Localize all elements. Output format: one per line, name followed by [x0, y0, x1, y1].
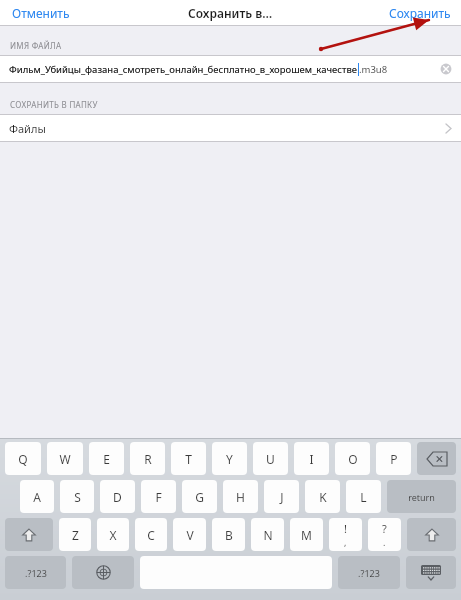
staticText: return: [408, 491, 435, 503]
button[interactable]: Файлы: [0, 115, 461, 141]
staticText: N: [263, 527, 273, 543]
staticText: Фильм_Убийцы_фазана_смотреть_онлайн_бесп…: [9, 63, 358, 76]
button[interactable]: return: [387, 480, 456, 513]
button[interactable]: F: [141, 480, 176, 513]
button[interactable]: Backspace: [417, 442, 456, 475]
staticText: J: [280, 489, 284, 505]
button[interactable]: I: [294, 442, 329, 475]
button[interactable]: ?: [368, 518, 401, 551]
button[interactable]: U: [253, 442, 288, 475]
button[interactable]: .?123: [338, 556, 400, 589]
staticText: U: [266, 451, 275, 467]
button[interactable]: !: [329, 518, 362, 551]
staticText: S: [74, 489, 81, 505]
staticText: G: [195, 489, 204, 505]
staticText: V: [186, 527, 194, 543]
staticText: ИМЯ ФАЙЛА: [10, 40, 62, 51]
staticText: W: [59, 451, 71, 467]
staticText: P: [390, 451, 398, 467]
staticText: Файлы: [9, 121, 46, 136]
button[interactable]: L: [346, 480, 381, 513]
staticText: E: [103, 451, 110, 467]
staticText: T: [185, 451, 192, 467]
button[interactable]: A: [20, 480, 54, 513]
staticText: Отменить: [12, 5, 70, 21]
button[interactable]: Q: [5, 442, 41, 475]
button[interactable]: Очистить: [439, 62, 453, 76]
staticText: L: [360, 489, 367, 505]
button[interactable]: Y: [212, 442, 247, 475]
button[interactable]: D: [100, 480, 135, 513]
staticText: B: [225, 527, 233, 543]
staticText: M: [301, 527, 312, 543]
button[interactable]: E: [89, 442, 124, 475]
staticText: K: [319, 489, 327, 505]
staticText: C: [147, 527, 155, 543]
button[interactable]: P: [376, 442, 411, 475]
button[interactable]: Z: [59, 518, 91, 551]
button[interactable]: .?123: [5, 556, 66, 589]
button[interactable]: J: [264, 480, 299, 513]
button[interactable]: G: [182, 480, 217, 513]
button[interactable]: Отменить: [6, 2, 76, 24]
button[interactable]: C: [135, 518, 167, 551]
button[interactable]: Фильм_Убийцы_фазана_смотреть_онлайн_бесп…: [0, 56, 461, 82]
staticText: СОХРАНИТЬ В ПАПКУ: [10, 99, 98, 110]
button[interactable]: V: [173, 518, 206, 551]
staticText: Y: [226, 451, 233, 467]
staticText: .m3u8: [359, 63, 388, 76]
staticText: I: [309, 451, 314, 467]
button[interactable]: Скрыть клавиатуру: [406, 556, 456, 589]
staticText: Сохранить в…: [188, 5, 273, 21]
staticText: R: [144, 451, 152, 467]
button[interactable]: S: [60, 480, 94, 513]
staticText: A: [33, 489, 41, 505]
staticText: H: [236, 489, 245, 505]
staticText: .?123: [358, 567, 380, 579]
button[interactable]: X: [97, 518, 129, 551]
staticText: .: [383, 536, 386, 548]
button[interactable]: M: [290, 518, 323, 551]
staticText: .?123: [25, 567, 47, 579]
button[interactable]: T: [171, 442, 206, 475]
staticText: F: [155, 489, 162, 505]
button[interactable]: Сменить язык: [72, 556, 134, 589]
staticText: Q: [18, 451, 28, 467]
button[interactable]: K: [305, 480, 340, 513]
button[interactable]: Сохранить: [383, 2, 457, 24]
staticText: Фильм_Убийцы_фазана_смотреть_онлайн_бесп…: [9, 63, 358, 76]
staticText: D: [113, 489, 122, 505]
button[interactable]: Shift: [407, 518, 456, 551]
staticText: Z: [72, 527, 79, 543]
button[interactable]: O: [335, 442, 370, 475]
staticText: !: [344, 521, 347, 536]
button[interactable]: Shift: [5, 518, 53, 551]
staticText: ?: [382, 521, 387, 536]
staticText: ,: [344, 536, 347, 548]
button[interactable]: R: [130, 442, 165, 475]
button[interactable]: B: [212, 518, 245, 551]
staticText: Сохранить: [389, 5, 451, 21]
staticText: X: [109, 527, 117, 543]
button[interactable]: N: [251, 518, 284, 551]
button[interactable]: H: [223, 480, 258, 513]
staticText: O: [348, 451, 358, 467]
button[interactable]: W: [47, 442, 83, 475]
